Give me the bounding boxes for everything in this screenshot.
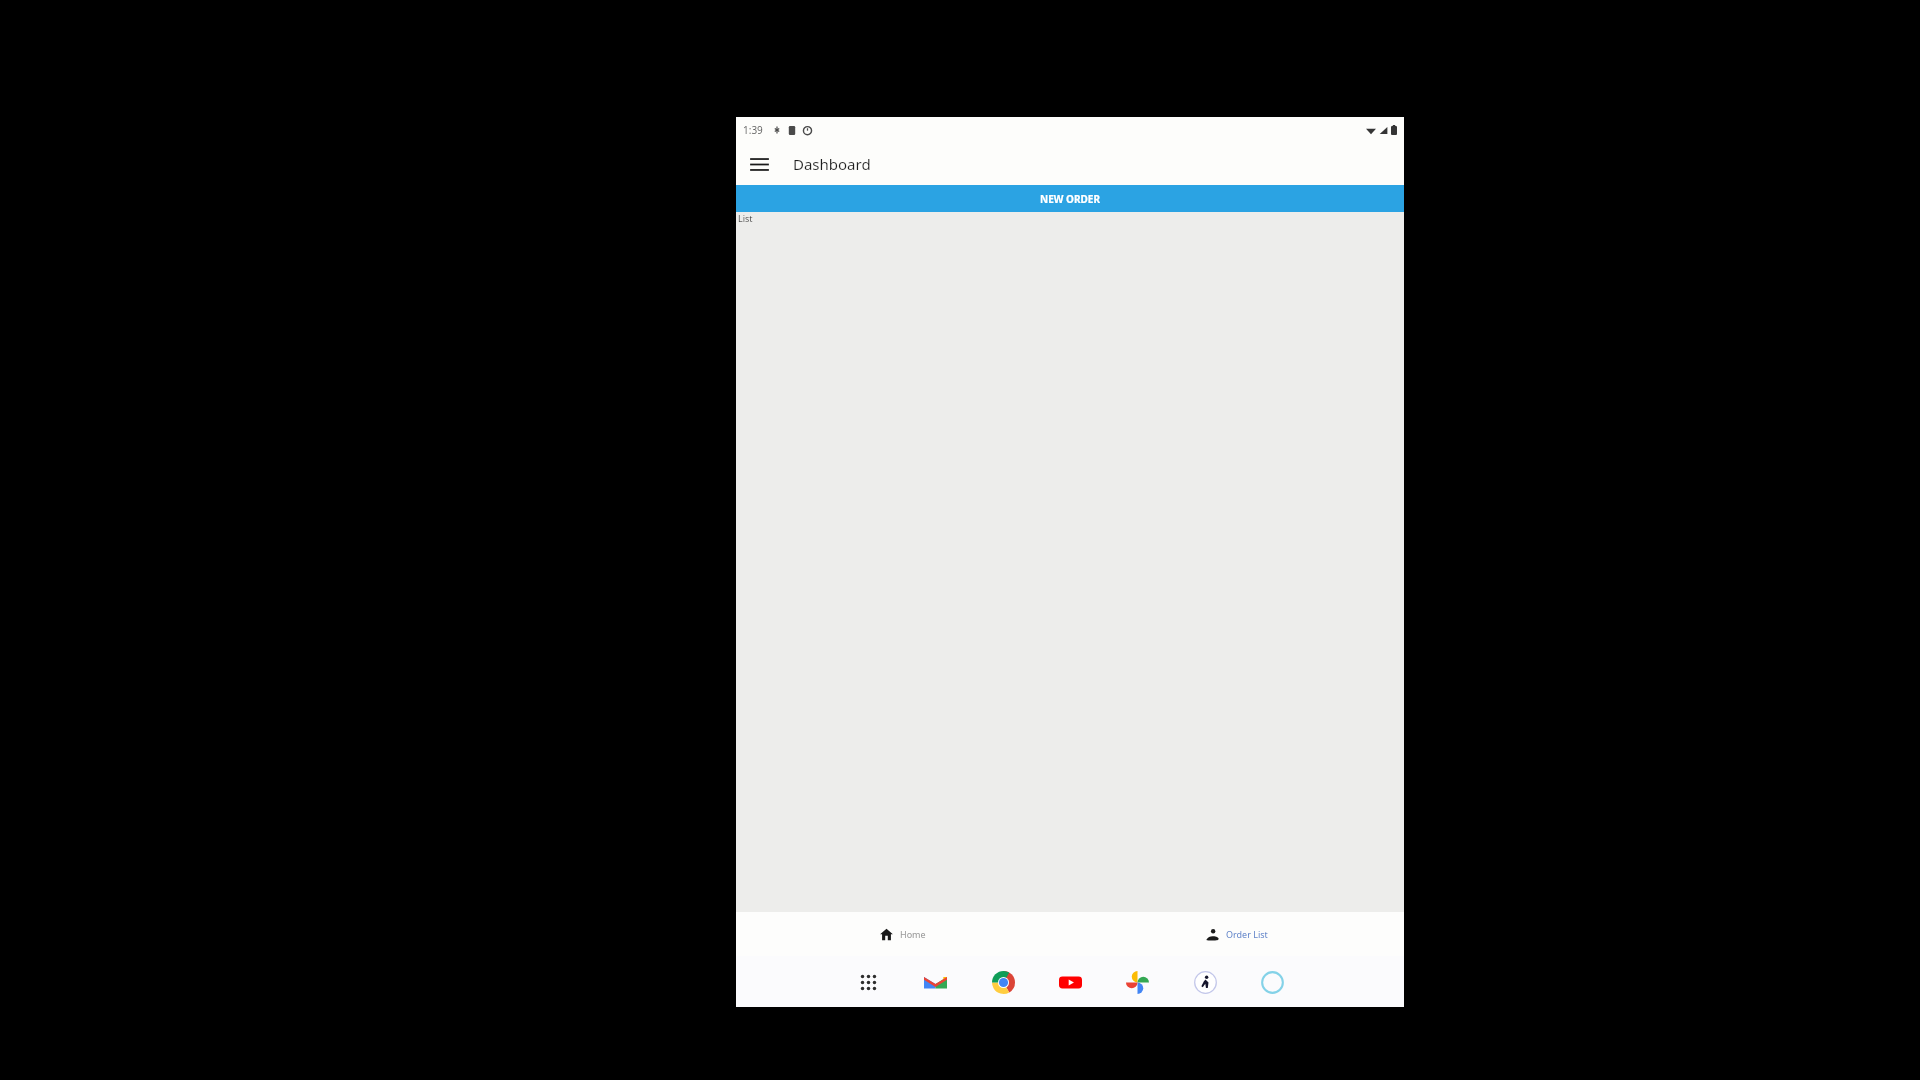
button[interactable]: YouTube xyxy=(1054,966,1086,998)
button[interactable]: Home xyxy=(736,912,1070,956)
staticText: Order List xyxy=(1226,928,1268,940)
button[interactable]: Open navigation menu xyxy=(743,148,775,180)
button[interactable]: Order List xyxy=(1070,912,1404,956)
staticText: 1:39 xyxy=(743,123,763,137)
staticText: Home xyxy=(900,928,926,940)
button[interactable]: Fit xyxy=(1189,966,1221,998)
button[interactable]: Gmail xyxy=(919,966,951,998)
staticText: NEW ORDER xyxy=(1040,192,1100,206)
staticText: Dashboard xyxy=(793,154,871,174)
button[interactable]: Chrome xyxy=(987,966,1019,998)
button[interactable]: All apps xyxy=(852,966,884,998)
button[interactable]: Assistant xyxy=(1256,966,1288,998)
button[interactable]: NEW ORDER xyxy=(736,185,1404,212)
staticText: List xyxy=(738,212,753,224)
button[interactable]: Google Photos xyxy=(1121,966,1153,998)
